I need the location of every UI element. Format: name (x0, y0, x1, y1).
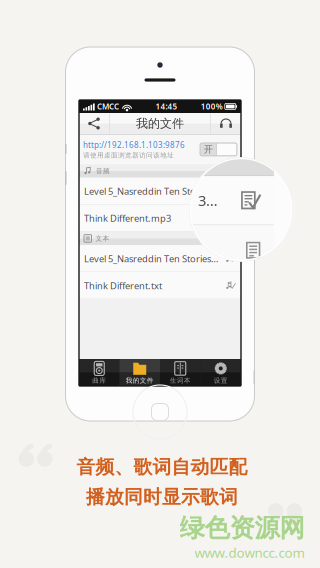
staticText: Level 5_Nasreddin Ten Sto (84, 185, 196, 197)
staticText: 3… (198, 190, 218, 210)
button[interactable]: 曲库 (79, 359, 119, 386)
staticText: 音频、歌词自动匹配 (76, 456, 247, 478)
staticText: Level 5_Nasreddin Ten Stories 3… (84, 252, 218, 265)
button[interactable]: Level 5_Nasreddin Ten Stories 3… (79, 245, 241, 272)
button[interactable]: Think Different.txt (79, 272, 241, 299)
button[interactable]: Toggle server (200, 143, 237, 156)
staticText: Think Different.txt (84, 279, 162, 292)
button[interactable]: 设置 (200, 359, 241, 386)
staticText: Think Different.mp3 (84, 212, 171, 224)
staticText: www.downcc.com (194, 544, 304, 561)
staticText: 绿色资源网 (179, 513, 304, 544)
staticText: 开 (204, 144, 213, 155)
staticText: 设置 (214, 376, 228, 385)
staticText: 我的文件 (126, 376, 154, 385)
staticText: 100% (201, 101, 223, 112)
staticText: 曲库 (92, 376, 106, 385)
staticText: 我的文件 (136, 116, 184, 131)
button[interactable]: 我的文件 (119, 359, 160, 386)
button[interactable]: Share (79, 113, 109, 133)
staticText: 播放同时显示歌词 (86, 485, 238, 508)
staticText: 生词本 (170, 376, 191, 385)
staticText: 音频 (96, 167, 110, 175)
staticText: 14:45 (155, 101, 177, 112)
staticText: 文本 (95, 234, 109, 243)
button[interactable]: Now playing (211, 113, 241, 133)
button[interactable]: 生词本 (160, 359, 200, 386)
button[interactable]: Level 5_Nasreddin Ten Sto (79, 178, 241, 205)
staticText: http://192.168.1.103:9876 (83, 139, 185, 150)
staticText: 请使用桌面浏览器访问该地址 (83, 151, 174, 159)
staticText: CMCC (97, 101, 119, 112)
button[interactable]: Think Different.mp3 (79, 205, 241, 232)
